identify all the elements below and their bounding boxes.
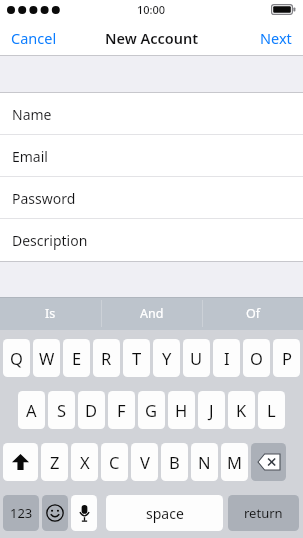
staticText: Email [12,147,48,166]
staticText: Name [12,105,52,124]
button[interactable]: M [221,443,248,481]
button[interactable]: Name [0,93,303,135]
button[interactable]: Cancel [0,19,68,56]
button[interactable]: Dictation [71,495,97,531]
button[interactable]: Of [203,297,303,330]
button[interactable]: Emoji [42,495,68,531]
staticText: 123 [10,504,33,522]
button[interactable]: R [93,339,120,377]
button[interactable]: P [273,339,300,377]
staticText: G [145,399,158,421]
button[interactable]: W [33,339,60,377]
button[interactable]: S [48,391,75,429]
button[interactable]: E [63,339,90,377]
staticText: A [26,399,37,421]
staticText: D [85,399,98,421]
staticText: Next [260,28,292,48]
staticText: space [146,504,184,523]
staticText: X [80,451,90,473]
staticText: Of [246,305,261,322]
staticText: M [227,451,242,473]
staticText: S [57,399,67,421]
staticText: return [244,504,283,522]
staticText: 10:00 [137,2,166,17]
staticText: Q [10,347,23,369]
button[interactable]: A [18,391,45,429]
button[interactable]: And [102,297,202,330]
button[interactable]: Z [41,443,68,481]
button[interactable]: Is [0,297,101,330]
button[interactable]: Y [153,339,180,377]
button[interactable]: Password [0,177,303,219]
button[interactable]: return [228,495,299,531]
button[interactable]: T [123,339,150,377]
staticText: L [267,399,276,421]
staticText: T [132,347,142,369]
button[interactable]: C [101,443,128,481]
button[interactable]: Next [249,19,303,56]
button[interactable]: Backspace [251,443,286,481]
staticText: N [198,451,211,473]
staticText: R [101,347,112,369]
staticText: E [72,347,82,369]
button[interactable]: X [71,443,98,481]
staticText: W [39,347,55,369]
staticText: U [190,347,203,369]
staticText: Z [50,451,60,473]
button[interactable]: U [183,339,210,377]
staticText: H [175,399,188,421]
staticText: O [250,347,263,369]
staticText: J [209,399,214,421]
staticText: Password [12,189,76,208]
button[interactable]: L [258,391,285,429]
button[interactable]: 123 [3,495,39,531]
button[interactable]: D [78,391,105,429]
button[interactable]: V [131,443,158,481]
staticText: Cancel [11,28,57,48]
button[interactable]: H [168,391,195,429]
staticText: C [109,451,120,473]
button[interactable]: O [243,339,270,377]
staticText: F [117,399,126,421]
button[interactable]: space [106,495,223,531]
button[interactable]: Shift [3,443,38,481]
button[interactable]: I [213,339,240,377]
button[interactable]: Description [0,219,303,261]
button[interactable]: G [138,391,165,429]
button[interactable]: N [191,443,218,481]
button[interactable]: J [198,391,225,429]
button[interactable]: K [228,391,255,429]
button[interactable]: Q [3,339,30,377]
staticText: I [224,347,230,369]
staticText: Description [12,231,88,250]
button[interactable]: B [161,443,188,481]
staticText: And [140,305,164,322]
button[interactable]: F [108,391,135,429]
staticText: B [169,451,180,473]
button[interactable]: Email [0,135,303,177]
staticText: P [282,347,292,369]
staticText: New Account [105,28,199,48]
staticText: K [236,399,247,421]
staticText: Y [162,347,172,369]
staticText: V [140,451,150,473]
staticText: Is [45,305,56,322]
